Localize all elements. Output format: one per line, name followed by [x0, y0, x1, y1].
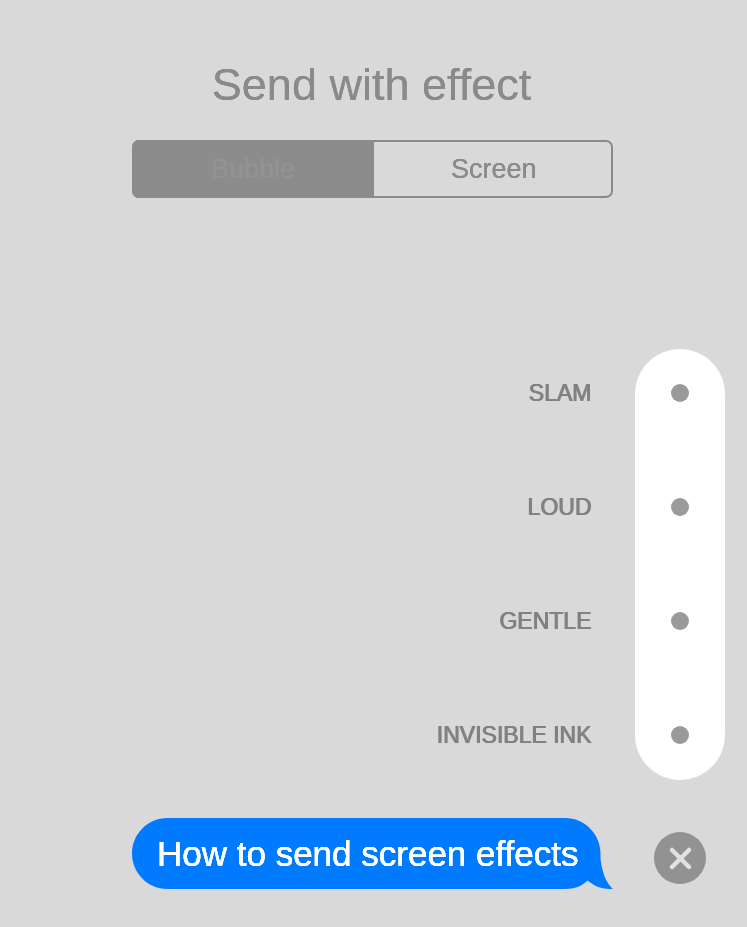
staticText: Screen: [451, 154, 537, 184]
staticText: How to send screen effects: [157, 834, 579, 873]
button[interactable]: How to send screen effects: [132, 818, 613, 889]
button[interactable]: Close send with effect: [654, 832, 706, 884]
button[interactable]: GENTLE: [391, 592, 725, 650]
staticText: SLAM: [391, 380, 591, 406]
staticText: INVISIBLE INK: [391, 722, 591, 748]
button[interactable]: Screen: [374, 140, 613, 198]
button[interactable]: SLAM: [391, 364, 725, 422]
button[interactable]: LOUD: [391, 478, 725, 536]
staticText: LOUD: [391, 494, 591, 520]
staticText: GENTLE: [391, 608, 591, 634]
button[interactable]: INVISIBLE INK: [391, 706, 725, 764]
staticText: Send with effect: [0, 59, 745, 109]
